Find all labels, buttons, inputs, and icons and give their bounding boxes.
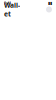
staticText: Wallet bbox=[4, 1, 20, 18]
staticText: 9:41 bbox=[4, 0, 11, 6]
staticText: ▮▮ bbox=[48, 1, 52, 5]
